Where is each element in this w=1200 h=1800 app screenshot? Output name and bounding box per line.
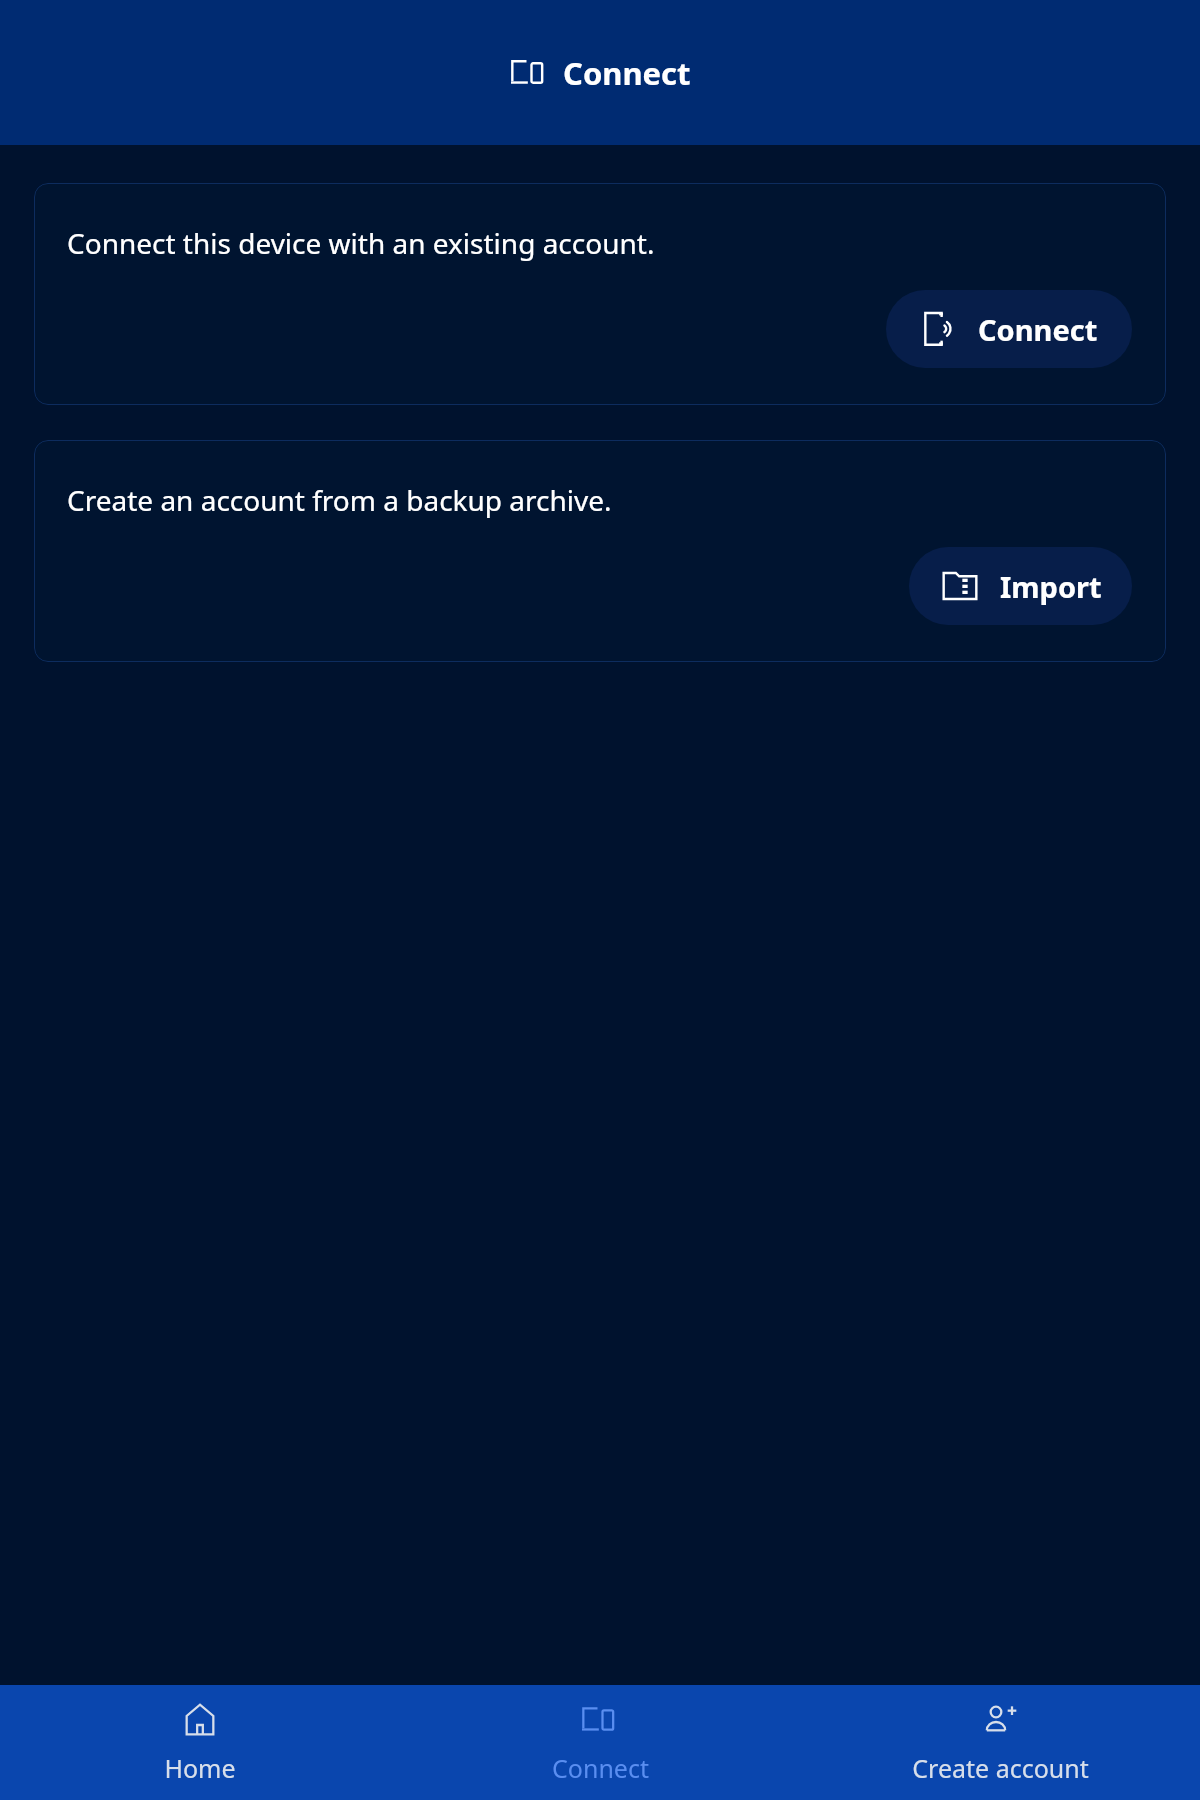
staticText: Connect [552, 1751, 649, 1785]
button[interactable]: Create an account from a backup archive. [34, 440, 1166, 662]
staticText: Import [1000, 567, 1102, 606]
staticText: Connect this device with an existing acc… [67, 224, 655, 262]
staticText: Create account [912, 1751, 1089, 1785]
button[interactable]: Create account [800, 1690, 1200, 1795]
button[interactable]: Connect [886, 290, 1132, 368]
staticText: Create an account from a backup archive. [67, 481, 612, 519]
staticText: Connect [978, 310, 1098, 349]
button[interactable]: Import [909, 547, 1132, 625]
button[interactable]: Home [0, 1690, 400, 1795]
button[interactable]: Connect this device with an existing acc… [34, 183, 1166, 405]
staticText: Home [164, 1751, 236, 1785]
button[interactable]: Connect [400, 1690, 800, 1795]
staticText: Connect [563, 52, 691, 94]
